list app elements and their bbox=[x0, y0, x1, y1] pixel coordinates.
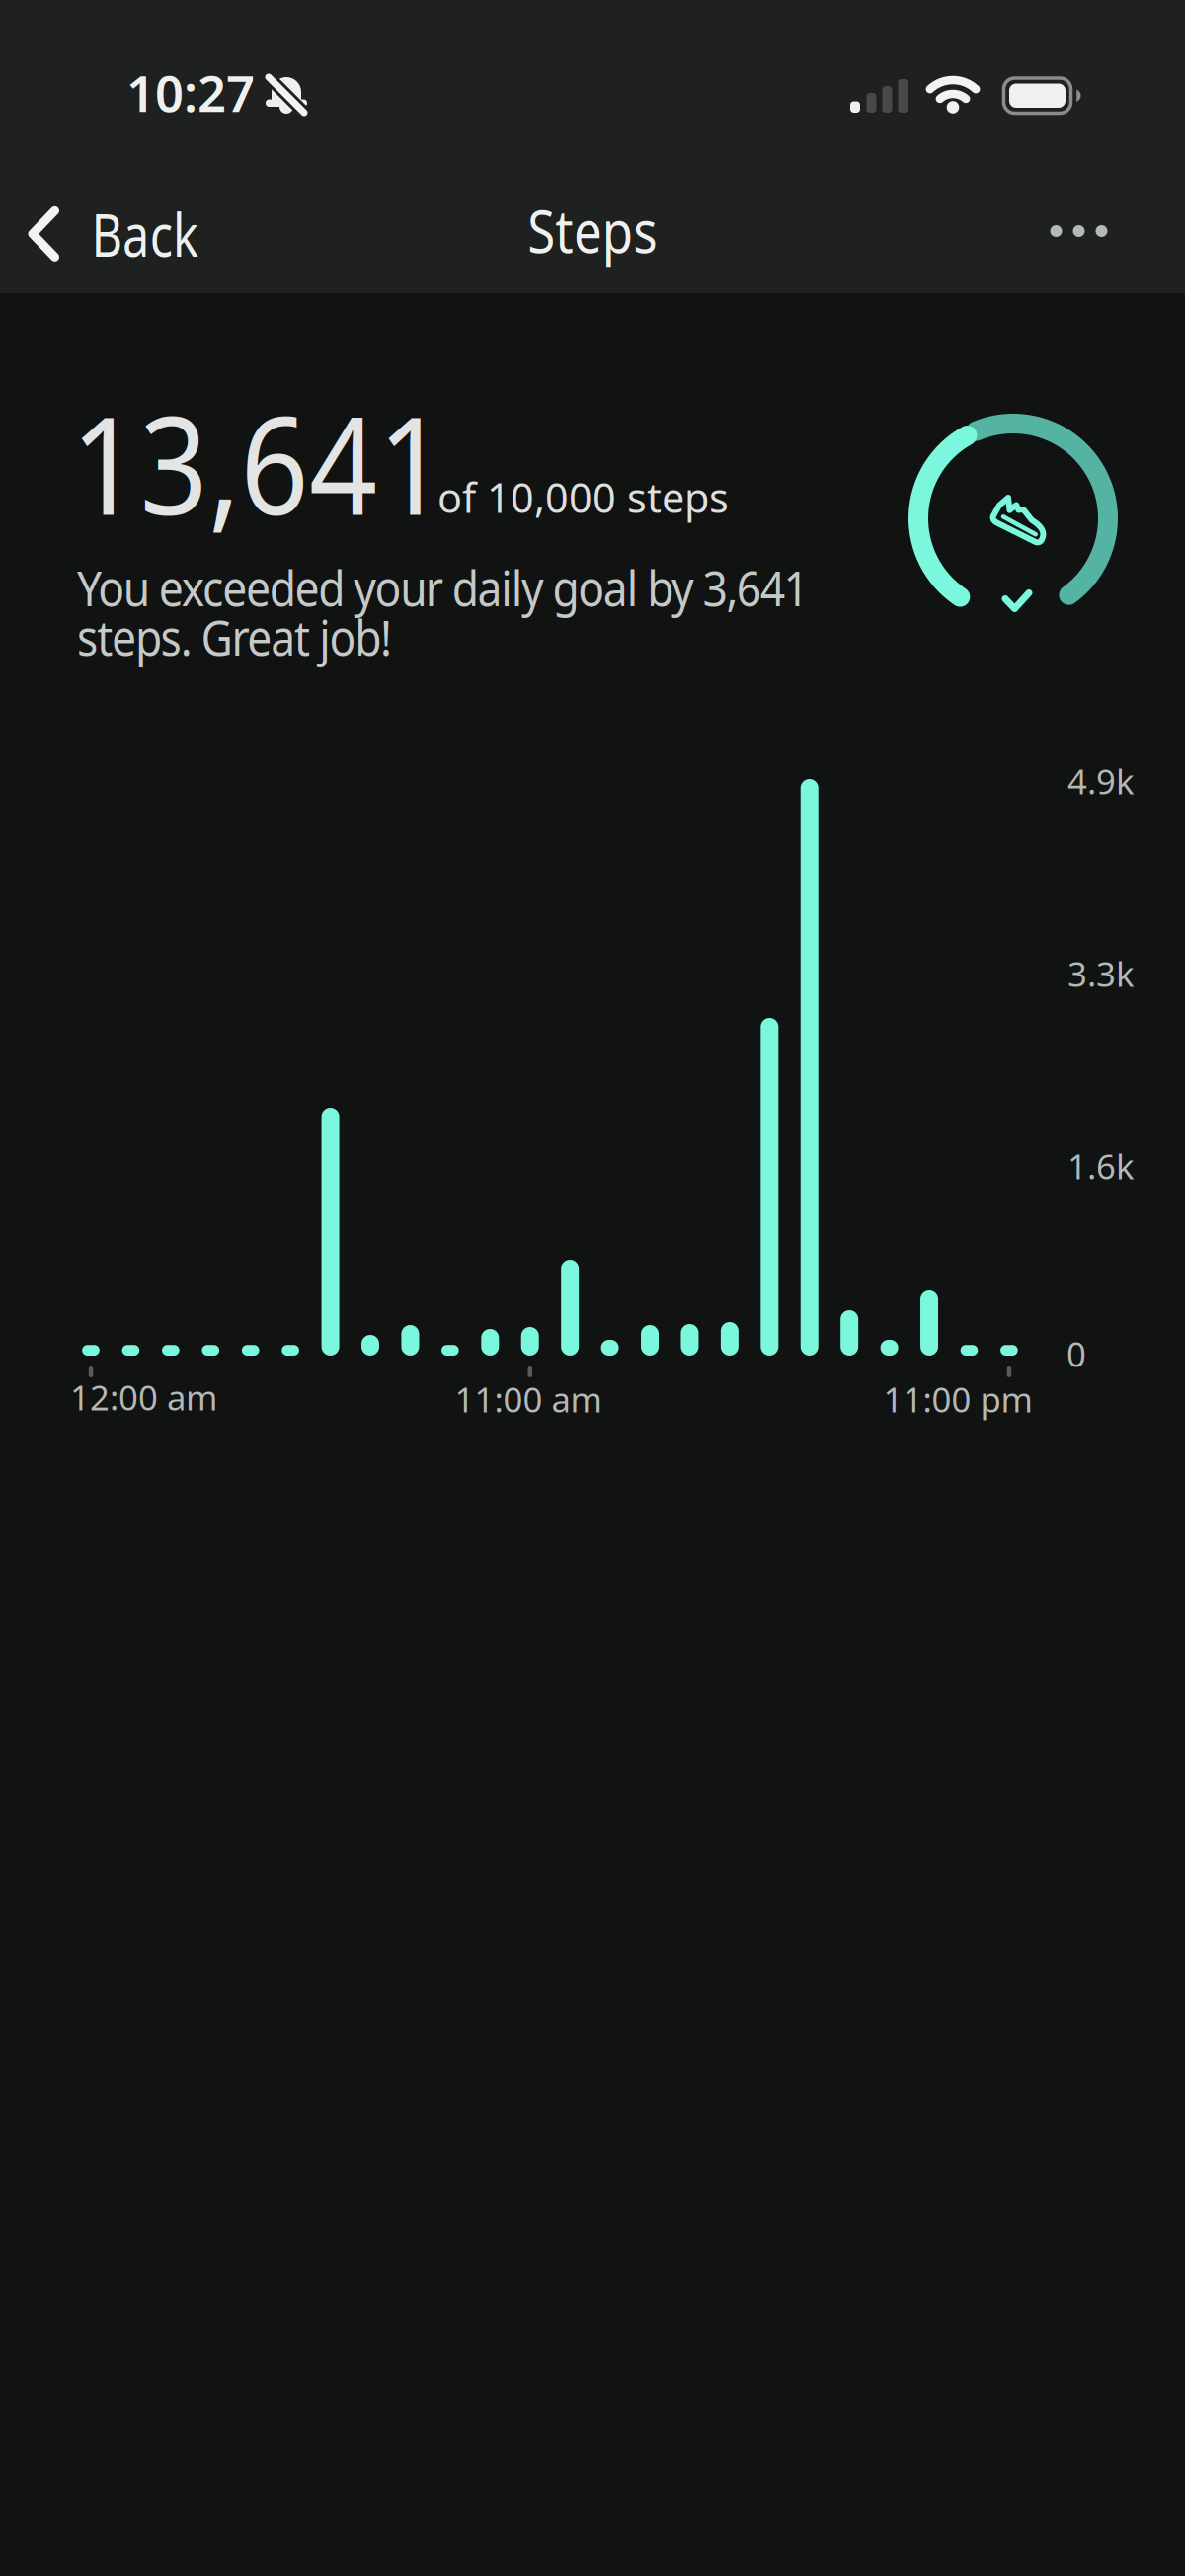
staticText: 10:27 bbox=[126, 59, 255, 126]
staticText: 3.3k bbox=[1067, 951, 1135, 996]
staticText: Back bbox=[91, 195, 224, 273]
staticText: 4.9k bbox=[1067, 758, 1135, 804]
staticText: 13,641 bbox=[71, 372, 498, 552]
staticText: of 10,000 steps bbox=[437, 470, 729, 524]
staticText: Steps bbox=[516, 191, 669, 269]
button[interactable]: Back bbox=[28, 195, 224, 273]
staticText: steps. Great job! bbox=[77, 604, 427, 669]
staticText: 12:00 am bbox=[70, 1374, 217, 1420]
button[interactable]: More options bbox=[1050, 225, 1107, 237]
staticText: 11:00 pm bbox=[883, 1376, 1032, 1422]
staticText: 0 bbox=[1066, 1331, 1086, 1376]
staticText: You exceeded your daily goal by 3,641 bbox=[77, 555, 890, 620]
staticText: 1.6k bbox=[1067, 1143, 1135, 1189]
staticText: 11:00 am bbox=[455, 1376, 602, 1422]
